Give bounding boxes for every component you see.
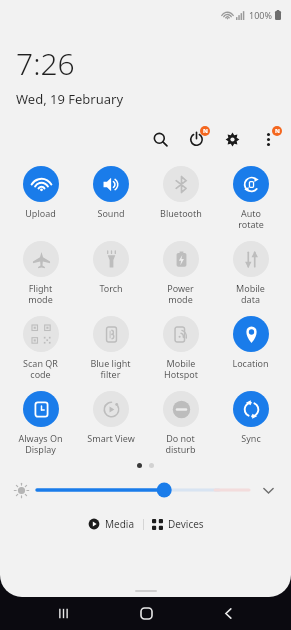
staticText: Flight mode xyxy=(28,282,53,305)
staticText: N xyxy=(275,127,280,135)
staticText: Torch xyxy=(99,282,123,294)
button[interactable]: Power off xyxy=(185,128,207,150)
button[interactable]: Auto rotate xyxy=(216,164,285,230)
staticText: Wed, 19 February xyxy=(16,90,124,108)
button[interactable]: Sync xyxy=(216,389,285,444)
button[interactable]: Back xyxy=(208,597,248,630)
button[interactable]: Upload xyxy=(6,164,75,219)
button[interactable]: Brightness xyxy=(37,481,249,499)
button[interactable]: Location xyxy=(216,314,285,369)
staticText: Power mode xyxy=(167,282,194,305)
button[interactable]: Blue light filter xyxy=(76,314,145,380)
button[interactable]: Bluetooth xyxy=(146,164,215,219)
button[interactable]: Scan QR code xyxy=(6,314,75,380)
staticText: 100% xyxy=(249,9,272,21)
staticText: Do not disturb xyxy=(165,432,196,455)
button[interactable]: Sound xyxy=(76,164,145,219)
button[interactable]: Expand xyxy=(259,481,277,499)
staticText: Sound xyxy=(97,207,125,219)
button[interactable]: Always On Display xyxy=(6,389,75,455)
button[interactable]: Flight mode xyxy=(6,239,75,305)
button[interactable]: Smart View xyxy=(76,389,145,444)
staticText: Mobile Hotspot xyxy=(164,357,198,380)
staticText: N xyxy=(203,127,208,135)
button[interactable]: Recents xyxy=(43,597,83,630)
staticText: Bluetooth xyxy=(160,207,202,219)
staticText: Scan QR code xyxy=(23,357,58,380)
staticText: Auto rotate xyxy=(238,207,264,230)
button[interactable]: Do not disturb xyxy=(146,389,215,455)
button[interactable]: Settings xyxy=(221,128,243,150)
staticText: Sync xyxy=(241,432,261,444)
staticText: Blue light filter xyxy=(90,357,131,380)
staticText: 7:26 xyxy=(16,43,75,84)
button[interactable]: Mobile Hotspot xyxy=(146,314,215,380)
staticText: Devices xyxy=(168,517,204,531)
button[interactable]: Media xyxy=(80,514,143,534)
button[interactable]: Mobile data xyxy=(216,239,285,305)
button[interactable]: Search xyxy=(149,128,171,150)
staticText: Smart View xyxy=(87,432,135,444)
staticText: Media xyxy=(105,517,135,531)
button[interactable]: Home xyxy=(126,597,166,630)
button[interactable]: More options xyxy=(257,128,279,150)
button[interactable]: Power mode xyxy=(146,239,215,305)
staticText: Always On Display xyxy=(18,432,63,455)
staticText: Mobile data xyxy=(236,282,265,305)
button[interactable]: Devices xyxy=(144,514,212,534)
staticText: Upload xyxy=(25,207,56,219)
staticText: Location xyxy=(232,357,269,369)
button[interactable]: Torch xyxy=(76,239,145,294)
